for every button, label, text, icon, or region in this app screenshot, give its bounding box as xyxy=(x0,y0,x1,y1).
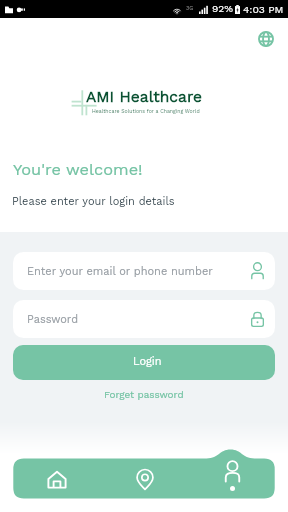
staticText: 3G xyxy=(186,5,194,11)
staticText: Please enter your login details xyxy=(12,195,175,208)
button[interactable]: Profile xyxy=(218,461,246,497)
button[interactable]: Enter your email or phone number xyxy=(13,252,275,290)
staticText: Enter your email or phone number xyxy=(27,265,251,278)
staticText: Healthcare Solutions for a Changing Worl… xyxy=(92,108,200,114)
staticText: AMI Healthcare xyxy=(86,88,203,106)
staticText: Login xyxy=(133,355,162,368)
button[interactable]: Forget password xyxy=(104,389,184,401)
button[interactable]: Login xyxy=(13,345,275,380)
staticText: Password xyxy=(27,313,251,326)
button[interactable]: Language xyxy=(255,28,276,49)
button[interactable]: Home xyxy=(43,466,70,493)
button[interactable]: Location xyxy=(131,466,158,493)
staticText: You're welcome! xyxy=(13,160,143,179)
staticText: 92% xyxy=(212,3,233,15)
staticText: 4:03 PM xyxy=(243,3,284,15)
button[interactable]: Password xyxy=(13,300,275,338)
